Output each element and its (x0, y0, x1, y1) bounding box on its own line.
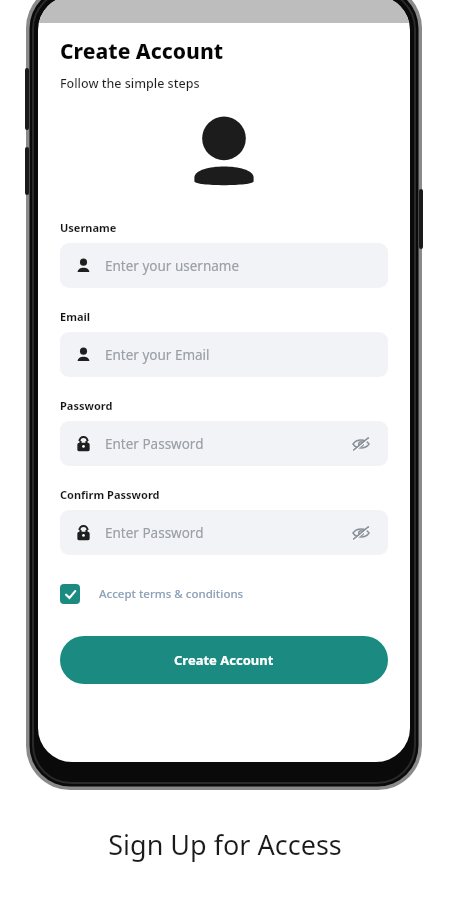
staticText: Accept terms & conditions (99, 586, 244, 602)
staticText: Sign Up for Access (108, 826, 342, 863)
staticText: Confirm Password (60, 487, 160, 502)
button[interactable]: Show password (350, 433, 372, 455)
staticText: Create Account (174, 651, 274, 669)
staticText: Enter Password (105, 524, 204, 542)
button[interactable]: Enter your username (60, 243, 388, 288)
staticText: Username (60, 220, 117, 235)
staticText: Enter Password (105, 435, 204, 453)
staticText: Follow the simple steps (60, 75, 200, 92)
button[interactable]: Accept terms & conditions (60, 582, 244, 606)
staticText: Enter your username (105, 257, 240, 275)
button[interactable]: Enter your Email (60, 332, 388, 377)
staticText: Create Account (60, 37, 224, 66)
button[interactable]: Enter Password (60, 421, 388, 466)
staticText: Password (60, 398, 113, 413)
button[interactable]: Enter Password (60, 510, 388, 555)
button[interactable]: Show password (350, 522, 372, 544)
staticText: Email (60, 309, 91, 324)
staticText: Enter your Email (105, 346, 210, 364)
button[interactable]: Create Account (60, 636, 388, 684)
